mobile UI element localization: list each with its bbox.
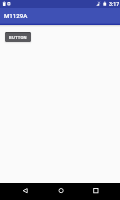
button[interactable]: BUTTON	[5, 32, 31, 42]
button[interactable]: Recents	[80, 183, 120, 200]
button[interactable]: Back	[0, 183, 40, 200]
staticText: 3:17	[109, 1, 120, 7]
button[interactable]: Home	[40, 183, 80, 200]
staticText: BUTTON	[9, 35, 27, 40]
staticText: M1129A	[4, 12, 28, 19]
